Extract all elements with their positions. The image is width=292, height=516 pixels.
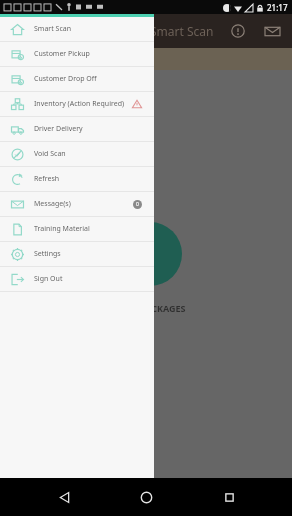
- staticText: 21:17: [267, 2, 288, 13]
- button[interactable]: Inventory (Action Required): [0, 92, 154, 116]
- staticText: Smart Scan: [150, 23, 214, 39]
- staticText: Sign Out: [34, 274, 154, 284]
- staticText: Refresh: [34, 174, 154, 184]
- staticText: Void Scan: [34, 149, 154, 159]
- button[interactable]: Message(s): [0, 192, 154, 216]
- button[interactable]: Driver Delivery: [0, 117, 154, 141]
- staticText: Smart Scan: [34, 24, 154, 34]
- staticText: Customer Drop Off: [34, 74, 154, 84]
- staticText: Training Material: [34, 224, 154, 234]
- button[interactable]: Training Material: [0, 217, 154, 241]
- button[interactable]: Refresh: [0, 167, 154, 191]
- button[interactable]: Information: [228, 21, 248, 41]
- staticText: Settings: [34, 249, 154, 259]
- staticText: PACKAGES: [140, 302, 186, 314]
- button[interactable]: Messages: [262, 21, 282, 41]
- button[interactable]: Back: [45, 478, 83, 516]
- staticText: Inventory (Action Required): [34, 99, 132, 109]
- button[interactable]: Customer Pickup: [0, 42, 154, 66]
- button[interactable]: Smart Scan: [0, 17, 154, 41]
- button[interactable]: Void Scan: [0, 142, 154, 166]
- staticText: Driver Delivery: [34, 124, 154, 134]
- button[interactable]: Sign Out: [0, 267, 154, 291]
- button[interactable]: Home: [127, 478, 165, 516]
- staticText: Message(s): [34, 199, 133, 209]
- button[interactable]: Customer Drop Off: [0, 67, 154, 91]
- button[interactable]: Settings: [0, 242, 154, 266]
- staticText: Customer Pickup: [34, 49, 154, 59]
- button[interactable]: Recent apps: [210, 478, 248, 516]
- staticText: 0: [136, 201, 139, 208]
